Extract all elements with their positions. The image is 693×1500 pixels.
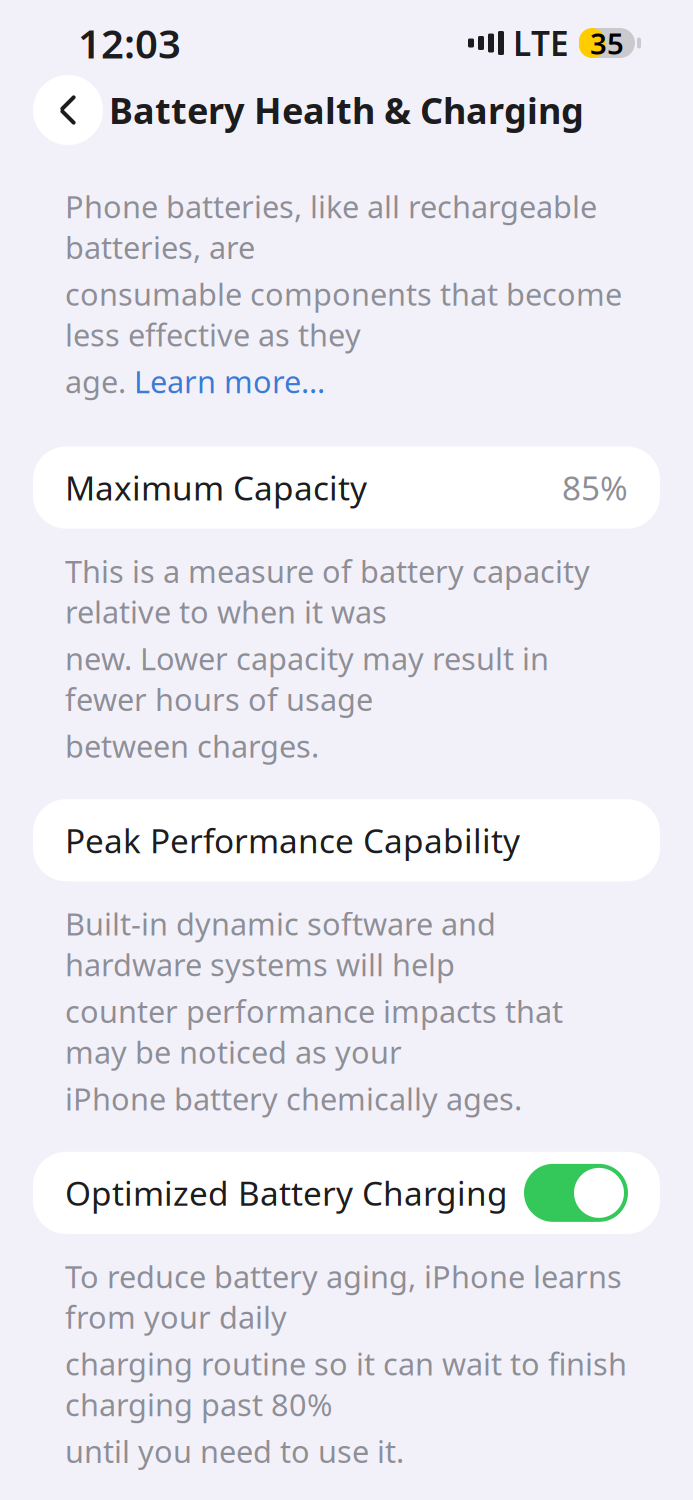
- staticText: Built-in dynamic software and hardware s…: [65, 903, 496, 985]
- staticText: iPhone battery chemically ages.: [65, 1078, 522, 1119]
- staticText: age.: [65, 361, 134, 402]
- staticText: Battery Health & Charging: [109, 86, 584, 134]
- staticText: Peak Performance Capability: [65, 818, 520, 862]
- staticText: To reduce battery aging, iPhone learns f…: [65, 1256, 622, 1337]
- staticText: 35: [590, 23, 624, 62]
- button[interactable]: Optimized Battery Charging: [33, 1152, 660, 1234]
- staticText: new. Lower capacity may result in fewer …: [65, 638, 549, 719]
- staticText: 12:03: [78, 16, 181, 69]
- button[interactable]: Maximum Capacity: [33, 447, 660, 529]
- staticText: Optimized Battery Charging: [65, 1171, 508, 1215]
- staticText: Learn more...: [134, 361, 325, 402]
- staticText: until you need to use it.: [65, 1431, 404, 1471]
- staticText: Maximum Capacity: [65, 465, 367, 510]
- staticText: 85%: [562, 465, 628, 510]
- staticText: counter performance impacts that may be …: [65, 991, 563, 1072]
- staticText: Phone batteries, like all rechargeable b…: [65, 186, 597, 267]
- staticText: consumable components that become less e…: [65, 273, 622, 355]
- staticText: between charges.: [65, 725, 319, 766]
- staticText: charging routine so it can wait to finis…: [65, 1343, 627, 1425]
- staticText: This is a measure of battery capacity re…: [65, 551, 590, 632]
- button[interactable]: Learn more...: [134, 361, 325, 402]
- button[interactable]: Peak Performance Capability: [33, 799, 660, 881]
- button[interactable]: Back: [33, 75, 103, 145]
- staticText: LTE: [513, 21, 569, 65]
